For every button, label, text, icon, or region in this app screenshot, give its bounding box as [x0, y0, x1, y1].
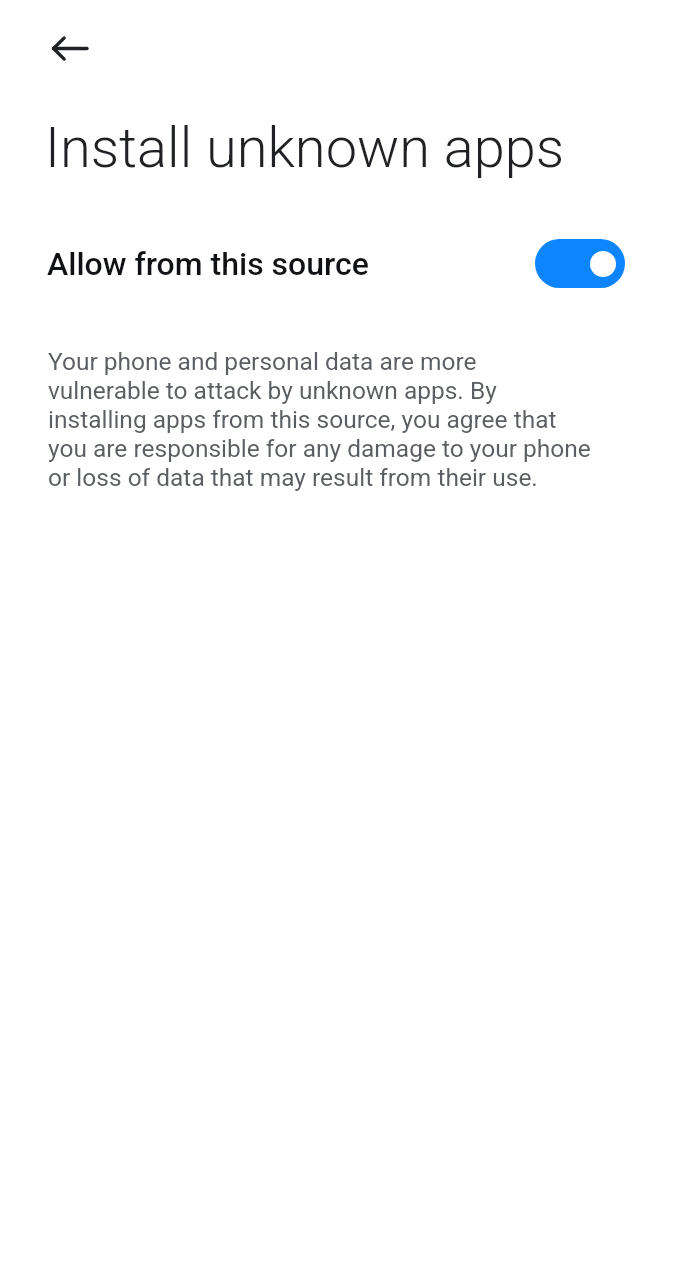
- staticText: Allow from this source: [47, 245, 369, 283]
- button[interactable]: Navigate up: [26, 23, 77, 74]
- button[interactable]: Allow from this source: [0, 234, 675, 293]
- button[interactable]: Allow from this source, on: [535, 239, 625, 288]
- staticText: Install unknown apps: [45, 115, 565, 181]
- staticText: Your phone and personal data are more vu…: [48, 347, 594, 492]
